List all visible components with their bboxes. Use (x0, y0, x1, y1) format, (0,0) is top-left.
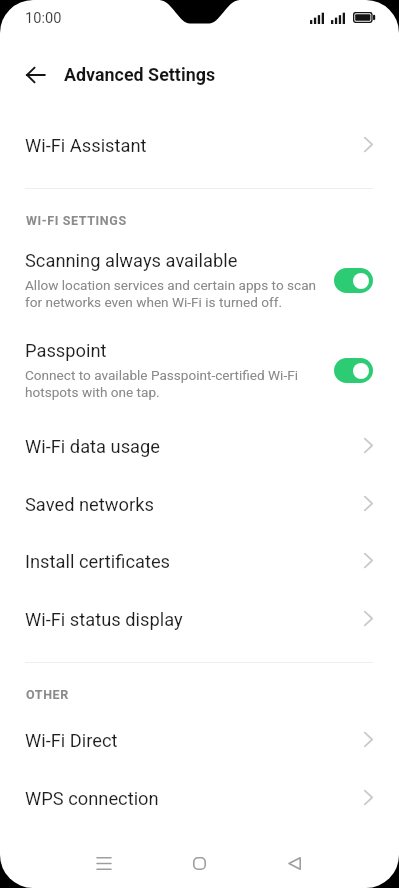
button[interactable]: Install certificates (0, 532, 399, 590)
button[interactable]: Back (271, 840, 317, 886)
button[interactable]: Wi-Fi data usage (0, 417, 399, 475)
button[interactable]: Scanning always available (0, 233, 399, 323)
button[interactable]: Passpoint (0, 323, 399, 413)
button[interactable]: Recent apps (81, 840, 127, 886)
button[interactable]: Saved networks (0, 475, 399, 533)
staticText: Allow location services and certain apps… (25, 277, 317, 310)
staticText: Scanning always available (25, 250, 238, 271)
staticText: OTHER (26, 687, 69, 702)
staticText: 10:00 (25, 9, 62, 26)
staticText: Wi-Fi Assistant (25, 135, 147, 156)
button[interactable]: Passpoint, on (334, 358, 373, 383)
button[interactable]: Wi-Fi Direct (0, 711, 399, 769)
button[interactable]: Home (176, 840, 222, 886)
staticText: Passpoint (25, 340, 107, 361)
staticText: Advanced Settings (64, 64, 216, 85)
staticText: Wi-Fi status display (25, 609, 183, 630)
staticText: Install certificates (25, 551, 171, 572)
staticText: Saved networks (25, 494, 154, 515)
button[interactable]: Wi-Fi Assistant (0, 116, 399, 174)
staticText: WPS connection (25, 788, 159, 809)
staticText: WI-FI SETTINGS (26, 213, 127, 228)
button[interactable]: Back (16, 55, 54, 93)
button[interactable]: Wi-Fi status display (0, 590, 399, 648)
staticText: Wi-Fi Direct (25, 730, 118, 751)
button[interactable]: WPS connection (0, 769, 399, 827)
button[interactable]: Scanning always available, on (334, 268, 373, 293)
staticText: Wi-Fi data usage (25, 436, 161, 457)
staticText: Connect to available Passpoint-certified… (25, 367, 298, 400)
